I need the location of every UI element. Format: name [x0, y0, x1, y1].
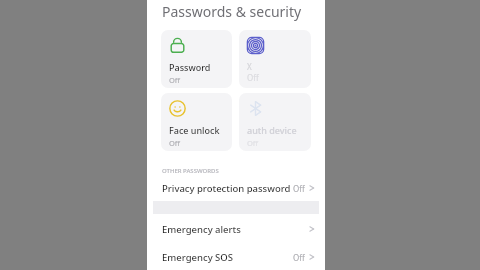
other: Open Emergency alerts	[309, 224, 315, 234]
staticText: Off	[247, 138, 259, 146]
button[interactable]: Emergency SOS	[147, 244, 325, 270]
button[interactable]: auth device	[239, 93, 311, 151]
button[interactable]: X	[239, 30, 311, 88]
staticText: Password	[169, 61, 211, 73]
staticText: Face unlock	[169, 124, 220, 136]
staticText: X	[247, 61, 252, 72]
staticText: Passwords & security	[162, 2, 302, 21]
staticText: Off	[247, 72, 259, 83]
staticText: Off	[169, 75, 181, 83]
button[interactable]: Privacy protection password	[147, 175, 325, 201]
staticText: OTHER PASSWORDS	[162, 167, 219, 175]
button[interactable]: Emergency alerts	[147, 214, 325, 244]
staticText: auth device	[247, 124, 297, 136]
other: Open Privacy protection password	[309, 183, 315, 193]
staticText: Off	[293, 183, 305, 194]
staticText: Emergency SOS	[162, 251, 293, 264]
staticText: Privacy protection password	[162, 182, 293, 195]
staticText: Emergency alerts	[162, 223, 309, 236]
staticText: Off	[293, 252, 305, 263]
button[interactable]: Password	[161, 30, 232, 88]
staticText: Off	[169, 138, 181, 146]
other: Open Emergency SOS	[309, 252, 315, 262]
button[interactable]: Face unlock	[161, 93, 232, 151]
